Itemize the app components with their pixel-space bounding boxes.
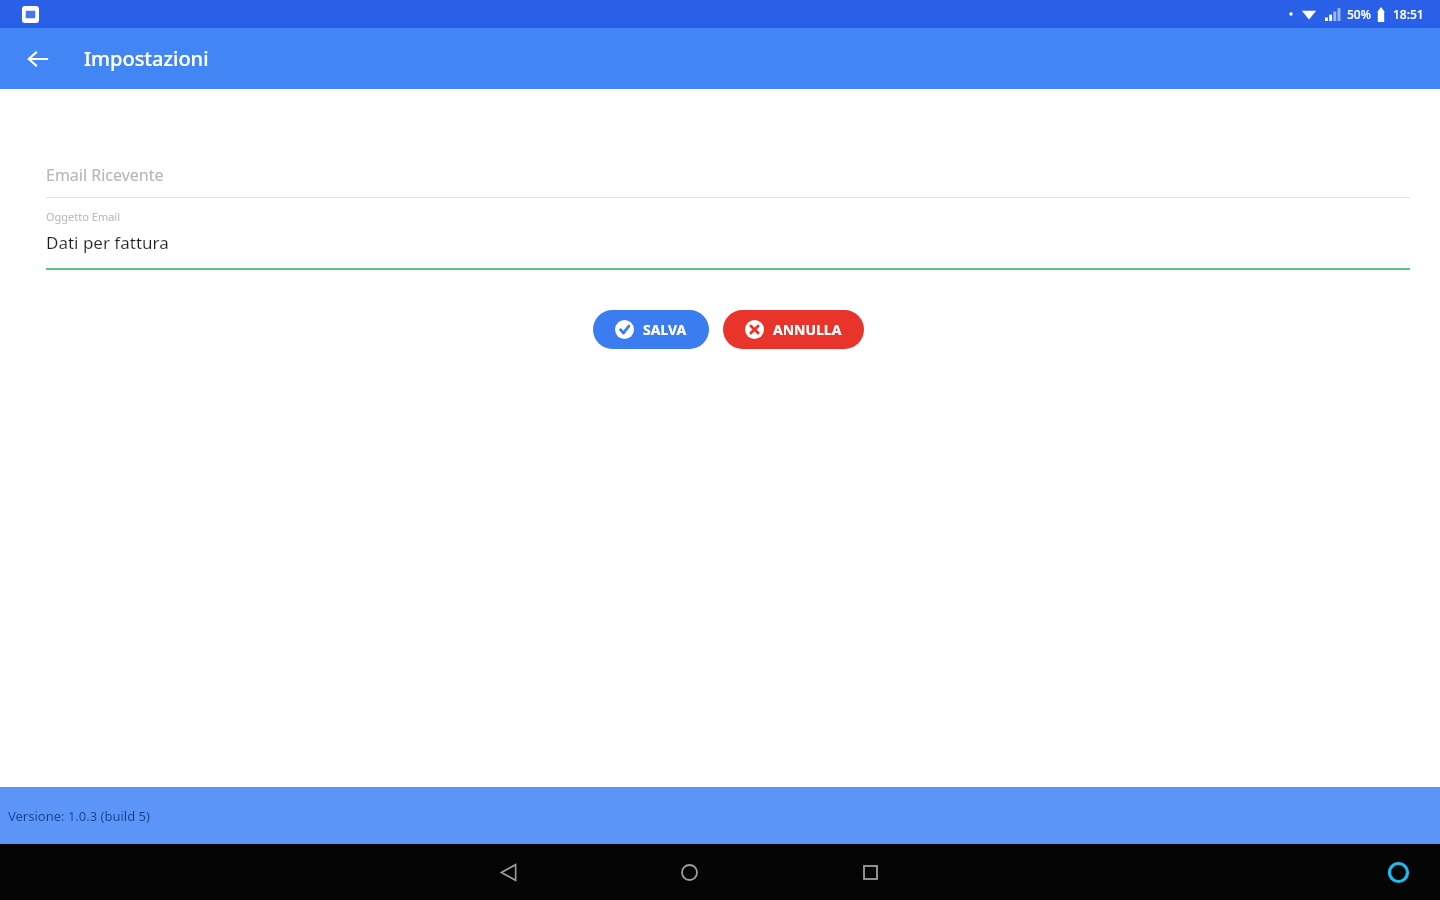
- staticText: Email Ricevente: [46, 164, 164, 186]
- staticText: 50%: [1347, 6, 1371, 22]
- staticText: Dati per fattura: [46, 231, 169, 254]
- staticText: 18:51: [1393, 6, 1424, 22]
- button[interactable]: Email Ricevente: [46, 157, 1410, 193]
- button[interactable]: ANNULLA: [723, 310, 864, 349]
- button[interactable]: Back: [480, 844, 536, 900]
- button[interactable]: Oggetto Email: [46, 209, 1410, 270]
- button[interactable]: Assistant: [1378, 852, 1418, 892]
- staticText: ANNULLA: [773, 320, 842, 339]
- button[interactable]: SALVA: [593, 310, 709, 349]
- staticText: Versione: 1.0.3 (build 5): [8, 807, 150, 825]
- button[interactable]: Recent apps: [842, 844, 898, 900]
- staticText: SALVA: [643, 320, 687, 339]
- button[interactable]: Home: [661, 844, 717, 900]
- staticText: Oggetto Email: [46, 209, 121, 224]
- staticText: Impostazioni: [84, 45, 209, 72]
- button[interactable]: Back: [16, 37, 60, 81]
